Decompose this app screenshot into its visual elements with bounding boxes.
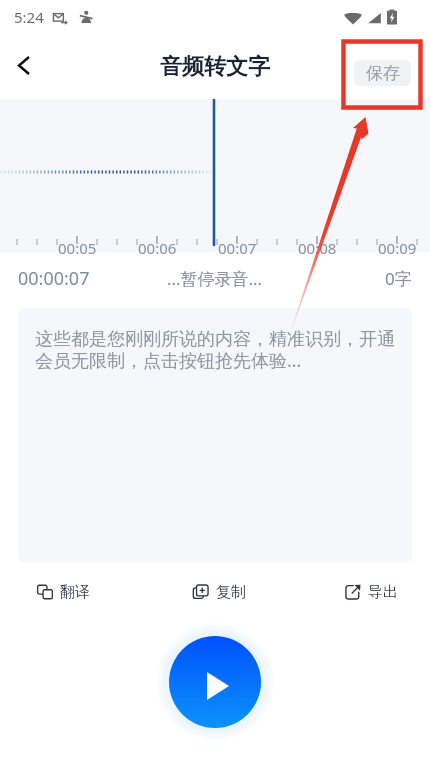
staticText: 这些都是您刚刚所说的内容，精准识别，开通会员无限制，点击按钮抢先体验… bbox=[35, 328, 401, 373]
button[interactable]: 保存 bbox=[354, 60, 411, 86]
staticText: 0字 bbox=[385, 267, 412, 290]
button[interactable]: 翻译 bbox=[29, 576, 98, 608]
staticText: 翻译 bbox=[60, 583, 90, 602]
staticText: …暂停录音… bbox=[167, 267, 262, 290]
staticText: 00:07 bbox=[218, 238, 257, 258]
button[interactable]: 复制 bbox=[185, 576, 254, 608]
staticText: 00:05 bbox=[58, 238, 97, 258]
staticText: 00:06 bbox=[138, 238, 177, 258]
staticText: 5:24 bbox=[14, 7, 44, 27]
staticText: 00:09 bbox=[378, 238, 417, 258]
button[interactable]: 导出 bbox=[337, 576, 406, 608]
button[interactable]: Back bbox=[1, 42, 47, 88]
staticText: 复制 bbox=[216, 583, 246, 602]
staticText: 00:08 bbox=[298, 238, 337, 258]
staticText: 保存 bbox=[366, 63, 400, 84]
staticText: 音频转文字 bbox=[160, 53, 270, 81]
button[interactable]: 这些都是您刚刚所说的内容，精准识别，开通会员无限制，点击按钮抢先体验… bbox=[18, 308, 412, 562]
button[interactable]: Play bbox=[169, 636, 261, 728]
staticText: 00:00:07 bbox=[18, 266, 90, 291]
staticText: 导出 bbox=[368, 583, 398, 602]
